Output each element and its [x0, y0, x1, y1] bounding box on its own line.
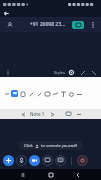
- button[interactable]: Text color: [11, 90, 18, 97]
- button[interactable]: Menu: [4, 69, 11, 76]
- button[interactable]: Home: [46, 170, 56, 180]
- staticText: to unmute yourself: [41, 143, 77, 148]
- staticText: Styles: [54, 70, 65, 75]
- button[interactable]: Camera: [68, 91, 74, 97]
- button[interactable]: Send: [52, 91, 58, 97]
- staticText: Note 1: [30, 111, 45, 117]
- button[interactable]: Screen share: [42, 155, 53, 166]
- button[interactable]: Keyboard: [65, 111, 71, 117]
- button[interactable]: End call: [77, 155, 88, 166]
- button[interactable]: Click: [24, 143, 77, 148]
- button[interactable]: Participants: [55, 155, 66, 166]
- button[interactable]: Back: [73, 170, 83, 180]
- button[interactable]: Link: [28, 91, 34, 97]
- button[interactable]: More: [76, 91, 82, 97]
- button[interactable]: Format: [68, 69, 75, 76]
- button[interactable]: Recents: [18, 170, 28, 180]
- button[interactable]: Expand: [79, 69, 86, 76]
- staticText: Click: [24, 143, 33, 148]
- button[interactable]: Add: [3, 155, 14, 166]
- button[interactable]: Image: [44, 91, 50, 97]
- button[interactable]: Next: [49, 111, 55, 117]
- button[interactable]: Back: [3, 10, 10, 17]
- button[interactable]: Mute: [16, 155, 27, 166]
- staticText: +91 20098 23...: [23, 21, 72, 28]
- button[interactable]: More options: [89, 21, 97, 29]
- button[interactable]: Fullscreen: [90, 69, 97, 76]
- button[interactable]: Participants: [4, 19, 15, 30]
- button[interactable]: Share screen: [72, 21, 84, 29]
- button[interactable]: Insert: [60, 91, 66, 97]
- button[interactable]: Previous: [20, 111, 26, 117]
- button[interactable]: Highlight: [20, 91, 26, 97]
- button[interactable]: Attachment: [36, 91, 42, 97]
- button[interactable]: Video: [29, 155, 40, 166]
